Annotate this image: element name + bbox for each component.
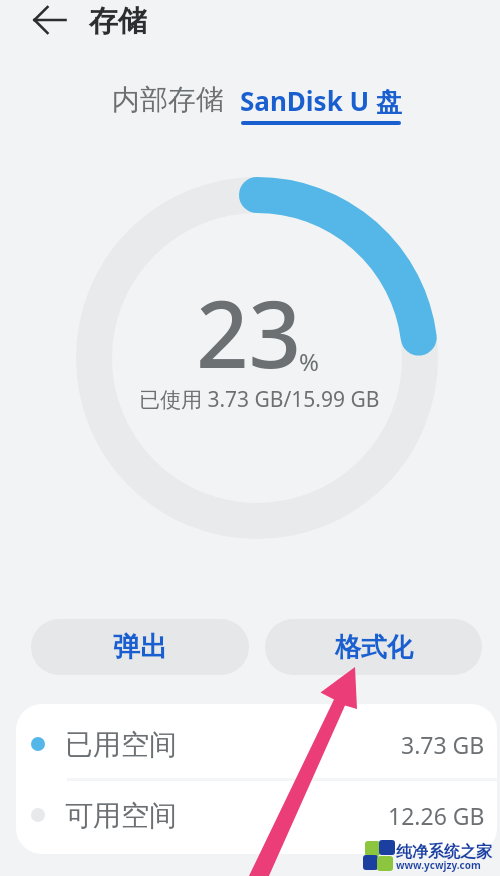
staticText: www.ycwjzy.com <box>396 858 481 872</box>
staticText: 弹出 <box>113 630 167 664</box>
staticText: 存储 <box>89 3 147 40</box>
button[interactable]: 已用空间 <box>16 704 497 779</box>
staticText: 23 <box>196 270 302 395</box>
button[interactable]: 内部存储 <box>112 82 224 117</box>
staticText: 可用空间 <box>65 798 177 833</box>
button[interactable]: SanDisk U 盘 <box>240 83 402 119</box>
button[interactable]: 可用空间 <box>16 779 497 854</box>
button[interactable]: 格式化 <box>265 619 482 675</box>
staticText: 已使用 3.73 GB/15.99 GB <box>139 385 380 414</box>
staticText: % <box>299 345 319 378</box>
staticText: 12.26 GB <box>388 800 485 831</box>
staticText: SanDisk U 盘 <box>240 83 402 119</box>
staticText: 3.73 GB <box>401 729 485 760</box>
staticText: 内部存储 <box>112 82 224 117</box>
button[interactable]: 弹出 <box>31 619 249 675</box>
staticText: 格式化 <box>335 631 413 664</box>
staticText: 纯净系统之家 <box>396 842 492 862</box>
button[interactable]: Back <box>22 0 78 40</box>
staticText: 已用空间 <box>65 727 177 762</box>
